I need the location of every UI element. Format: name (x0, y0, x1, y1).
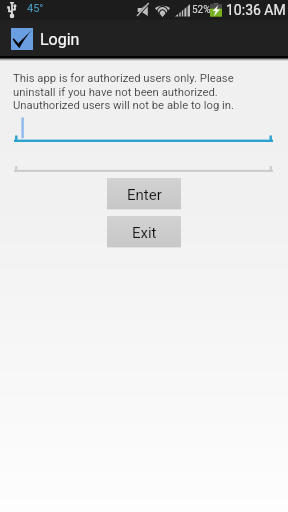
button[interactable]: Enter (107, 178, 181, 210)
button[interactable]: Password field (14, 146, 273, 172)
button[interactable]: App icon (11, 28, 33, 50)
button[interactable]: Username field (14, 116, 273, 142)
staticText: 10:36 AM (226, 2, 286, 18)
staticText: Enter (127, 186, 162, 204)
other: Sound muted (137, 3, 149, 17)
staticText: 52% (192, 4, 211, 16)
staticText: Login (40, 30, 80, 49)
staticText: 45° (27, 2, 44, 15)
other: Battery charging 52 percent (210, 3, 222, 17)
staticText: Exit (132, 224, 157, 242)
other: USB connected (7, 2, 17, 18)
button[interactable]: Exit (107, 216, 181, 248)
staticText: This app is for authorized users only. P… (13, 72, 247, 111)
